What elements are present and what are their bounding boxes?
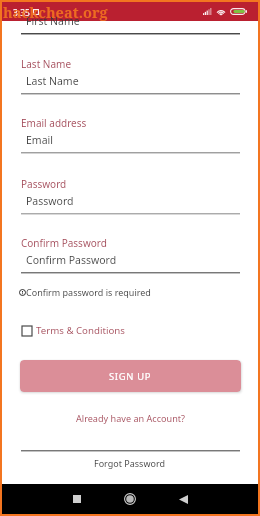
- staticText: Confirm Password: [21, 236, 107, 250]
- staticText: Password: [21, 177, 67, 191]
- staticText: First Name: [26, 14, 80, 28]
- staticText: hackcheat.org: [3, 2, 108, 22]
- button[interactable]: Recent apps: [63, 485, 91, 513]
- button[interactable]: Home: [116, 485, 144, 513]
- staticText: Password: [26, 194, 74, 208]
- staticText: Last Name: [21, 57, 72, 71]
- staticText: SIGN UP: [109, 370, 152, 383]
- staticText: Email address: [21, 116, 87, 130]
- staticText: Already have an Account?: [76, 412, 185, 424]
- staticText: Last Name: [26, 74, 79, 88]
- staticText: Email: [26, 133, 53, 147]
- staticText: Forgot Password: [94, 457, 166, 469]
- staticText: Confirm password is required: [26, 286, 151, 298]
- staticText: 3:35: [13, 7, 30, 19]
- staticText: Terms & Conditions: [36, 324, 125, 337]
- button[interactable]: Forgot Password: [0, 455, 260, 471]
- button[interactable]: Already have an Account?: [0, 410, 260, 426]
- staticText: Confirm Password: [26, 253, 117, 267]
- button[interactable]: SIGN UP: [20, 360, 241, 392]
- button[interactable]: Terms & Conditions: [22, 324, 125, 337]
- button[interactable]: Back: [169, 485, 197, 513]
